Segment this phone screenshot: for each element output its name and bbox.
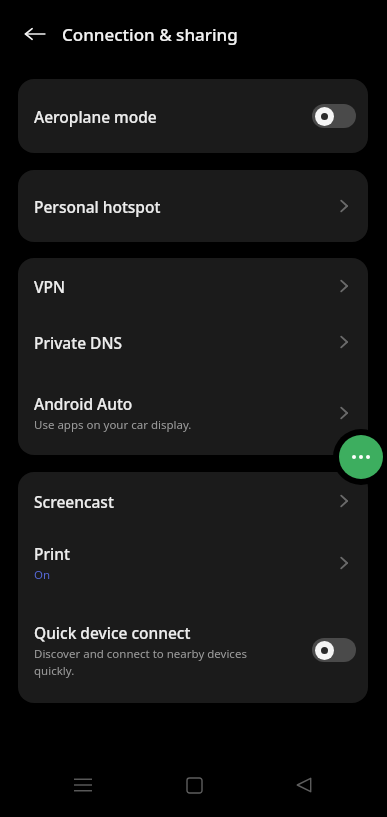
button[interactable]: Android Auto [18, 370, 368, 455]
button[interactable]: Toggle, off [312, 638, 356, 662]
button[interactable]: Back [276, 757, 332, 813]
button[interactable]: Private DNS [18, 314, 368, 370]
button[interactable]: Screencast [18, 472, 368, 530]
button[interactable]: Quick device connect [18, 596, 368, 703]
staticText: Use apps on your car display. [34, 417, 192, 433]
button[interactable]: Home [166, 757, 222, 813]
staticText: Print [34, 543, 70, 564]
staticText: Discover and connect to nearby devices q… [34, 646, 247, 678]
button[interactable]: More options [339, 435, 383, 479]
button[interactable]: Print [18, 530, 368, 596]
staticText: Screencast [34, 491, 114, 512]
button[interactable]: Toggle, off [312, 104, 356, 128]
staticText: Private DNS [34, 332, 122, 353]
staticText: Android Auto [34, 393, 133, 414]
staticText: Personal hotspot [34, 196, 161, 217]
button[interactable]: Back [14, 13, 56, 55]
staticText: Quick device connect [34, 622, 191, 643]
staticText: Connection & sharing [62, 23, 238, 46]
button[interactable]: Recents [55, 757, 111, 813]
staticText: Aeroplane mode [34, 106, 157, 127]
button[interactable]: Aeroplane mode [18, 79, 368, 153]
button[interactable]: Personal hotspot [18, 170, 368, 242]
staticText: VPN [34, 276, 66, 297]
button[interactable]: VPN [18, 258, 368, 314]
staticText: On [34, 567, 51, 583]
